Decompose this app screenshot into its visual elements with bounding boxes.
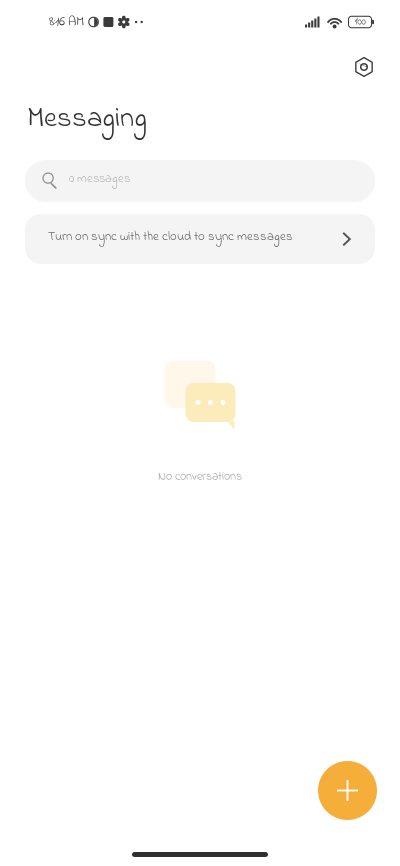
button[interactable]: 0 messages: [25, 160, 375, 202]
button[interactable]: Turn on sync with the cloud to sync mess…: [25, 214, 375, 264]
button[interactable]: New message: [318, 761, 377, 820]
staticText: Turn on sync with the cloud to sync mess…: [48, 228, 293, 246]
button[interactable]: Settings: [342, 45, 386, 89]
staticText: Messaging: [27, 98, 147, 140]
staticText: 8:16 AM: [49, 12, 84, 32]
staticText: 0 messages: [69, 170, 130, 188]
staticText: 100: [354, 15, 365, 29]
staticText: No conversations: [158, 468, 242, 485]
